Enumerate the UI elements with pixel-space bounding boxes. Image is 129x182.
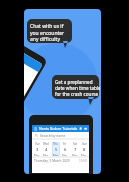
staticText: Search by name	[40, 133, 66, 138]
button[interactable]: Thu	[52, 142, 60, 156]
button[interactable]: Neets Bolore Tutorials	[32, 125, 89, 132]
staticText: 3	[36, 147, 39, 153]
button[interactable]: Tue	[33, 142, 41, 156]
button[interactable]: Sat	[71, 142, 79, 156]
staticText: Mar	[62, 154, 68, 156]
staticText: 10:00	[79, 159, 87, 163]
staticText: Thu	[53, 142, 59, 146]
staticText: Mar	[53, 154, 59, 156]
button[interactable]: Fri	[61, 142, 69, 156]
staticText: Mar	[34, 154, 40, 156]
staticText: 8	[83, 147, 86, 153]
staticText: Wed	[43, 142, 49, 146]
staticText: Mar	[81, 154, 87, 156]
button[interactable]: Sun	[80, 142, 88, 156]
staticText: Tue	[35, 142, 40, 146]
staticText: Mar	[43, 154, 49, 156]
staticText: Fri	[63, 142, 67, 146]
staticText: Neets Bolore Tutorials	[39, 126, 78, 131]
staticText: Mar	[72, 154, 78, 156]
button[interactable]: Wed	[42, 142, 50, 156]
staticText: Get a preplanned date when time table fo…	[55, 79, 100, 97]
staticText: Sun	[82, 142, 87, 146]
staticText: Sat	[73, 142, 78, 146]
staticText: 6	[64, 147, 67, 153]
staticText: Chat with us if you encounter any diffic…	[30, 23, 65, 42]
staticText: Thursday, 5 March 2020	[34, 159, 70, 163]
staticText: 4	[45, 147, 48, 153]
staticText: 7	[74, 147, 77, 153]
staticText: 5	[55, 147, 58, 153]
button[interactable]: Search by name	[32, 132, 89, 139]
